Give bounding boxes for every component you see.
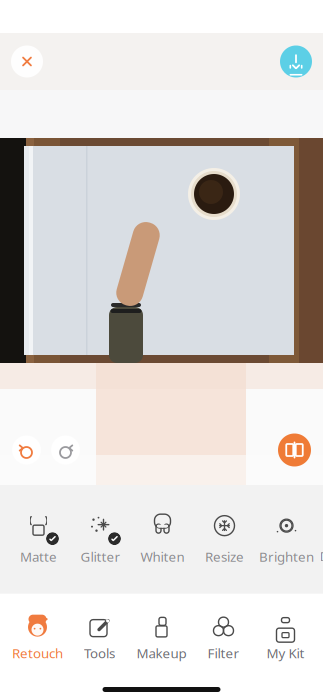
button[interactable]: Redo — [51, 435, 80, 464]
staticText: Glitter — [80, 548, 120, 565]
staticText: Makeup — [136, 644, 186, 662]
button[interactable]: Close — [11, 45, 43, 77]
button[interactable]: Makeup — [130, 611, 192, 666]
staticText: Tools — [84, 644, 115, 662]
staticText: Matte — [20, 548, 57, 565]
button[interactable]: Resize — [193, 507, 255, 571]
staticText: Resize — [205, 548, 244, 565]
button[interactable]: Matte — [7, 507, 69, 571]
staticText: Filter — [207, 644, 239, 662]
staticText: Whiten — [140, 548, 184, 565]
staticText: Brighten — [259, 548, 314, 565]
button[interactable]: Glitter — [69, 507, 131, 571]
button[interactable]: Crop — [278, 433, 311, 466]
button[interactable]: Undo — [12, 435, 41, 464]
button[interactable]: Whiten — [131, 507, 193, 571]
button[interactable]: Filter — [192, 611, 254, 666]
button[interactable]: Retouch — [6, 611, 68, 666]
staticText: My Kit — [266, 644, 304, 662]
button[interactable]: Save — [280, 45, 312, 77]
button[interactable]: My Kit — [254, 611, 316, 666]
staticText: D — [319, 547, 323, 565]
staticText: Retouch — [12, 644, 63, 662]
button[interactable]: Brighten — [255, 507, 317, 571]
button[interactable]: Tools — [68, 611, 130, 666]
